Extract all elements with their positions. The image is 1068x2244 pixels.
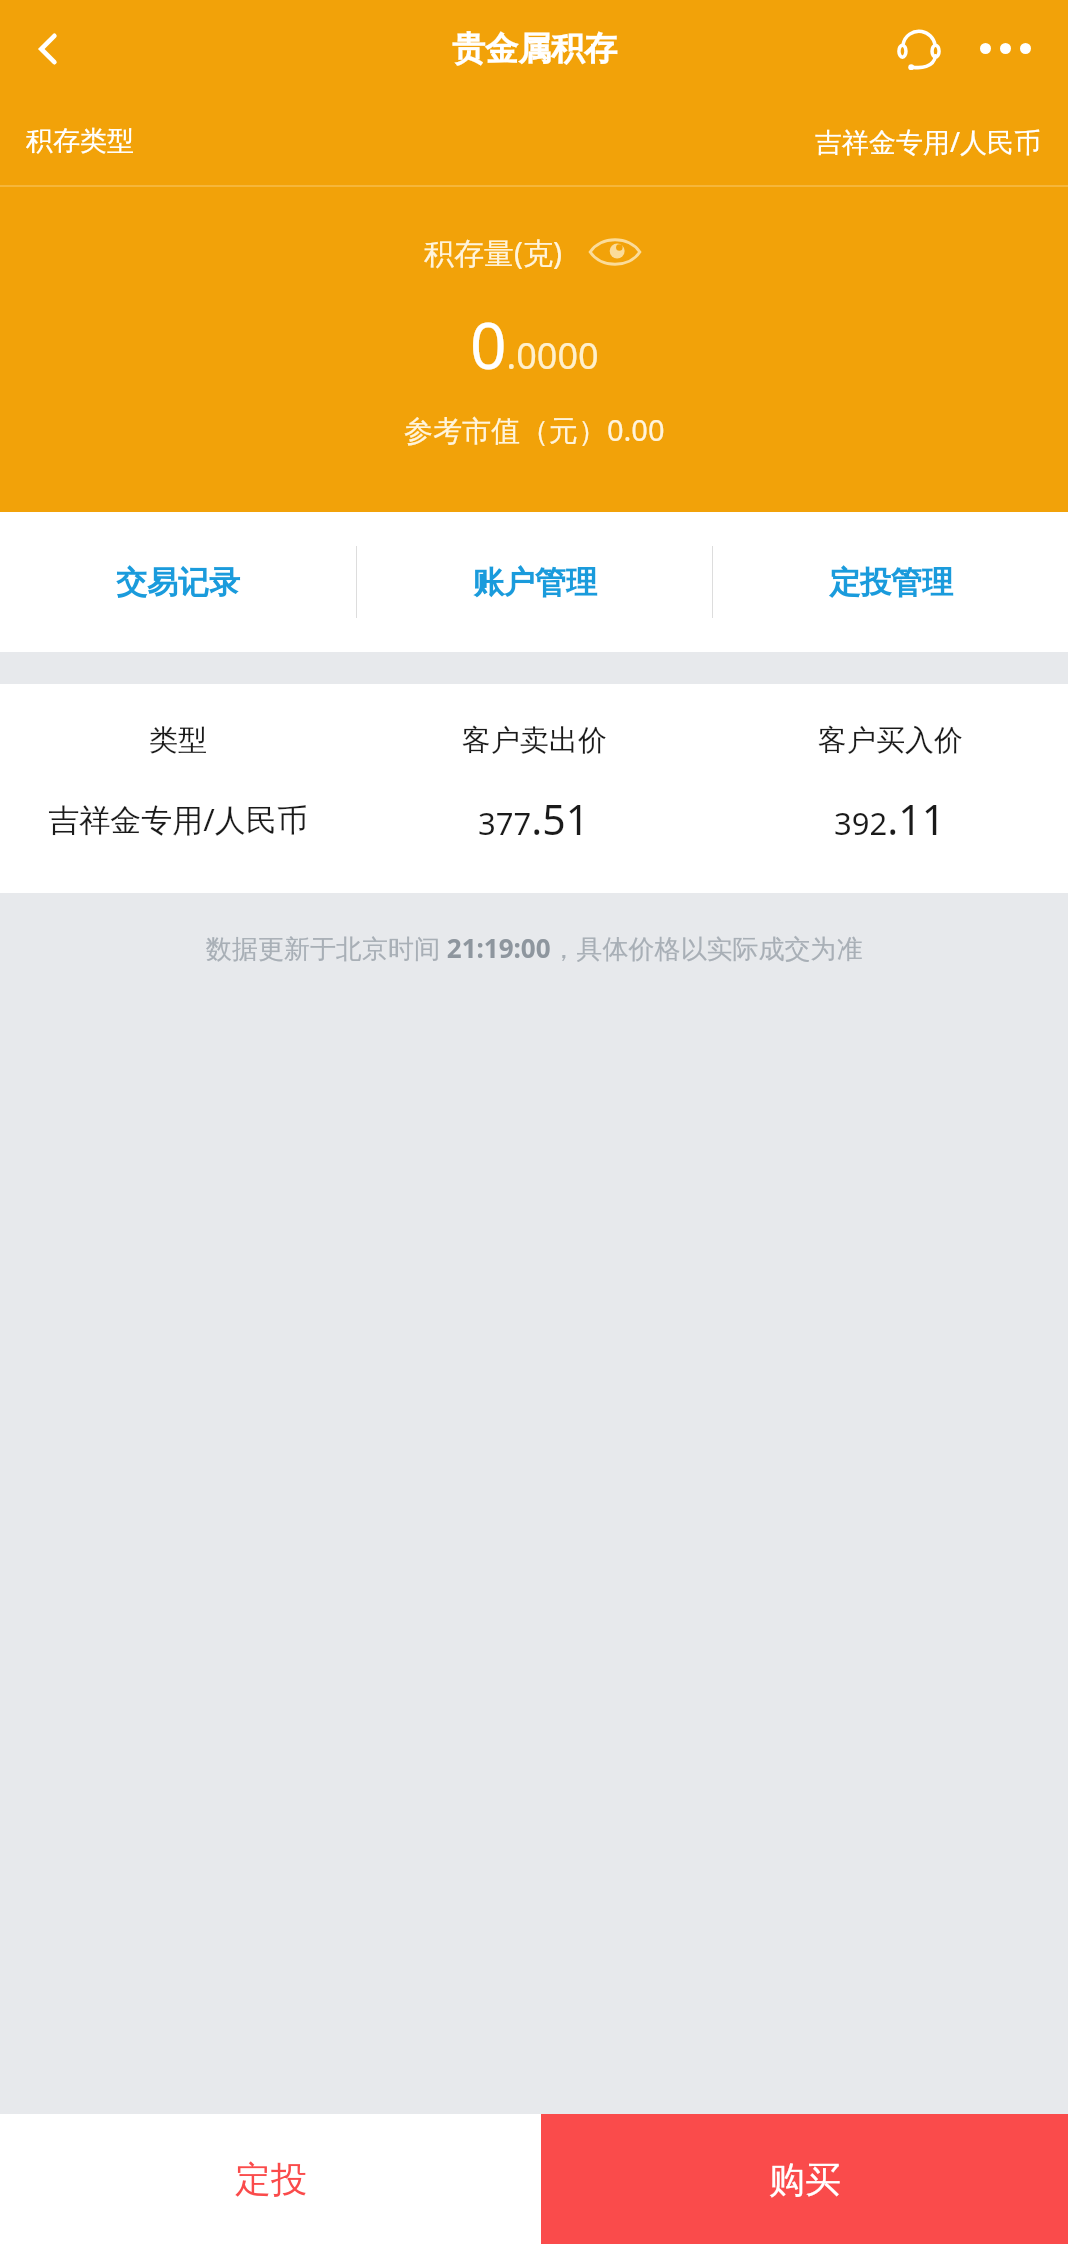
- staticText: 392.11: [834, 791, 946, 847]
- button[interactable]: 购买: [541, 2114, 1068, 2244]
- staticText: 参考市值（元）0.00: [404, 410, 665, 450]
- staticText: 吉祥金专用/人民币: [815, 123, 1042, 160]
- button[interactable]: 交易记录: [0, 512, 356, 652]
- staticText: 数据更新于北京时间 21:19:00，具体价格以实际成交为准: [206, 930, 863, 966]
- staticText: 购买: [769, 2157, 841, 2202]
- staticText: 账户管理: [473, 563, 597, 602]
- staticText: 积存类型: [26, 124, 134, 158]
- button[interactable]: More options: [962, 0, 1048, 97]
- button[interactable]: 账户管理: [357, 512, 712, 652]
- staticText: 定投: [235, 2157, 307, 2202]
- staticText: 类型: [149, 722, 207, 759]
- staticText: 贵金属积存: [452, 28, 617, 70]
- button[interactable]: 吉祥金专用/人民币: [0, 791, 1068, 847]
- button[interactable]: 定投: [0, 2114, 541, 2244]
- staticText: 0.0000: [470, 301, 599, 388]
- button[interactable]: Customer service: [876, 0, 962, 97]
- staticText: 定投管理: [829, 563, 953, 602]
- staticText: 377.51: [478, 791, 590, 847]
- button[interactable]: Toggle balance visibility: [586, 229, 644, 275]
- staticText: 交易记录: [116, 563, 240, 602]
- button[interactable]: Back: [0, 0, 96, 97]
- staticText: 客户买入价: [818, 722, 963, 759]
- staticText: 积存量(克): [424, 232, 562, 273]
- staticText: 客户卖出价: [462, 722, 607, 759]
- staticText: 吉祥金专用/人民币: [48, 798, 308, 840]
- button[interactable]: 定投管理: [713, 512, 1068, 652]
- button[interactable]: 积存类型: [0, 97, 1068, 185]
